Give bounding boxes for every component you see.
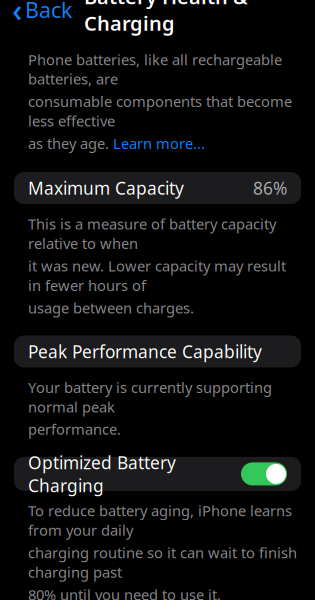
staticText: Phone batteries, like all rechargeable b… (28, 50, 282, 89)
staticText: usage between charges. (28, 298, 194, 317)
button[interactable]: Optimized Battery Charging (14, 457, 301, 491)
button[interactable]: Learn more... (113, 134, 205, 153)
staticText: To reduce battery aging, iPhone learns f… (28, 501, 292, 540)
staticText: Back (25, 0, 72, 24)
button[interactable]: Maximum Capacity (14, 172, 301, 204)
staticText: Your battery is currently supporting nor… (28, 377, 272, 416)
staticText: 86% (253, 177, 287, 200)
staticText: ‹ (12, 0, 22, 31)
button[interactable]: Peak Performance Capability (14, 335, 301, 367)
staticText: Peak Performance Capability (28, 340, 262, 363)
staticText: as they age. (28, 134, 113, 153)
staticText: 80% until you need to use it. (28, 585, 221, 600)
staticText: it was new. Lower capacity may result in… (28, 256, 286, 295)
staticText: Learn more... (113, 134, 205, 153)
staticText: consumable components that become less e… (28, 92, 292, 131)
staticText: performance. (28, 419, 121, 439)
button[interactable]: ‹ (0, 0, 78, 35)
staticText: This is a measure of battery capacity re… (28, 214, 276, 253)
staticText: Maximum Capacity (28, 177, 184, 200)
staticText: Optimized Battery Charging (28, 451, 176, 497)
staticText: Battery Health & Charging (84, 0, 248, 36)
staticText: charging routine so it can wait to finis… (28, 543, 297, 582)
